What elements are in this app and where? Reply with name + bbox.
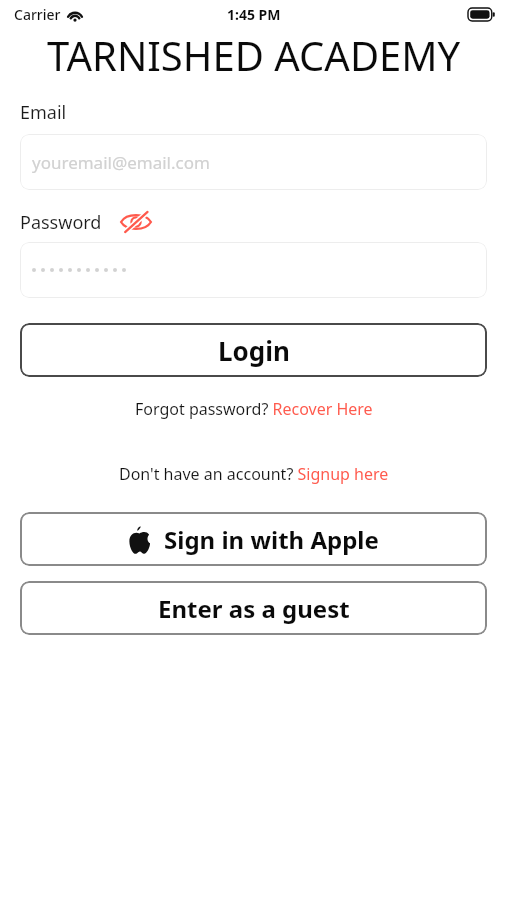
staticText: 1:45 PM [227,5,281,24]
staticText: Forgot password? Recover Here [135,398,373,420]
staticText: Email [20,100,67,125]
staticText: Sign in with Apple [164,523,379,556]
button[interactable] [20,242,487,298]
button[interactable]: Show password [118,209,154,235]
staticText: Enter as a guest [158,592,350,625]
staticText: Carrier [14,5,61,24]
button[interactable]: Sign in with Apple [20,512,487,566]
button[interactable]: Login [20,323,487,377]
button[interactable]: Enter as a guest [20,581,487,635]
staticText: Don't have an account? Signup here [119,463,389,485]
staticText: Login [218,333,290,368]
staticText: youremail@email.com [32,151,210,174]
staticText: TARNISHED ACADEMY [47,28,461,80]
button[interactable]: youremail@email.com [20,134,487,190]
button[interactable]: Recover password [0,397,507,421]
button[interactable]: Signup here [0,462,507,486]
staticText: Password [20,210,102,235]
